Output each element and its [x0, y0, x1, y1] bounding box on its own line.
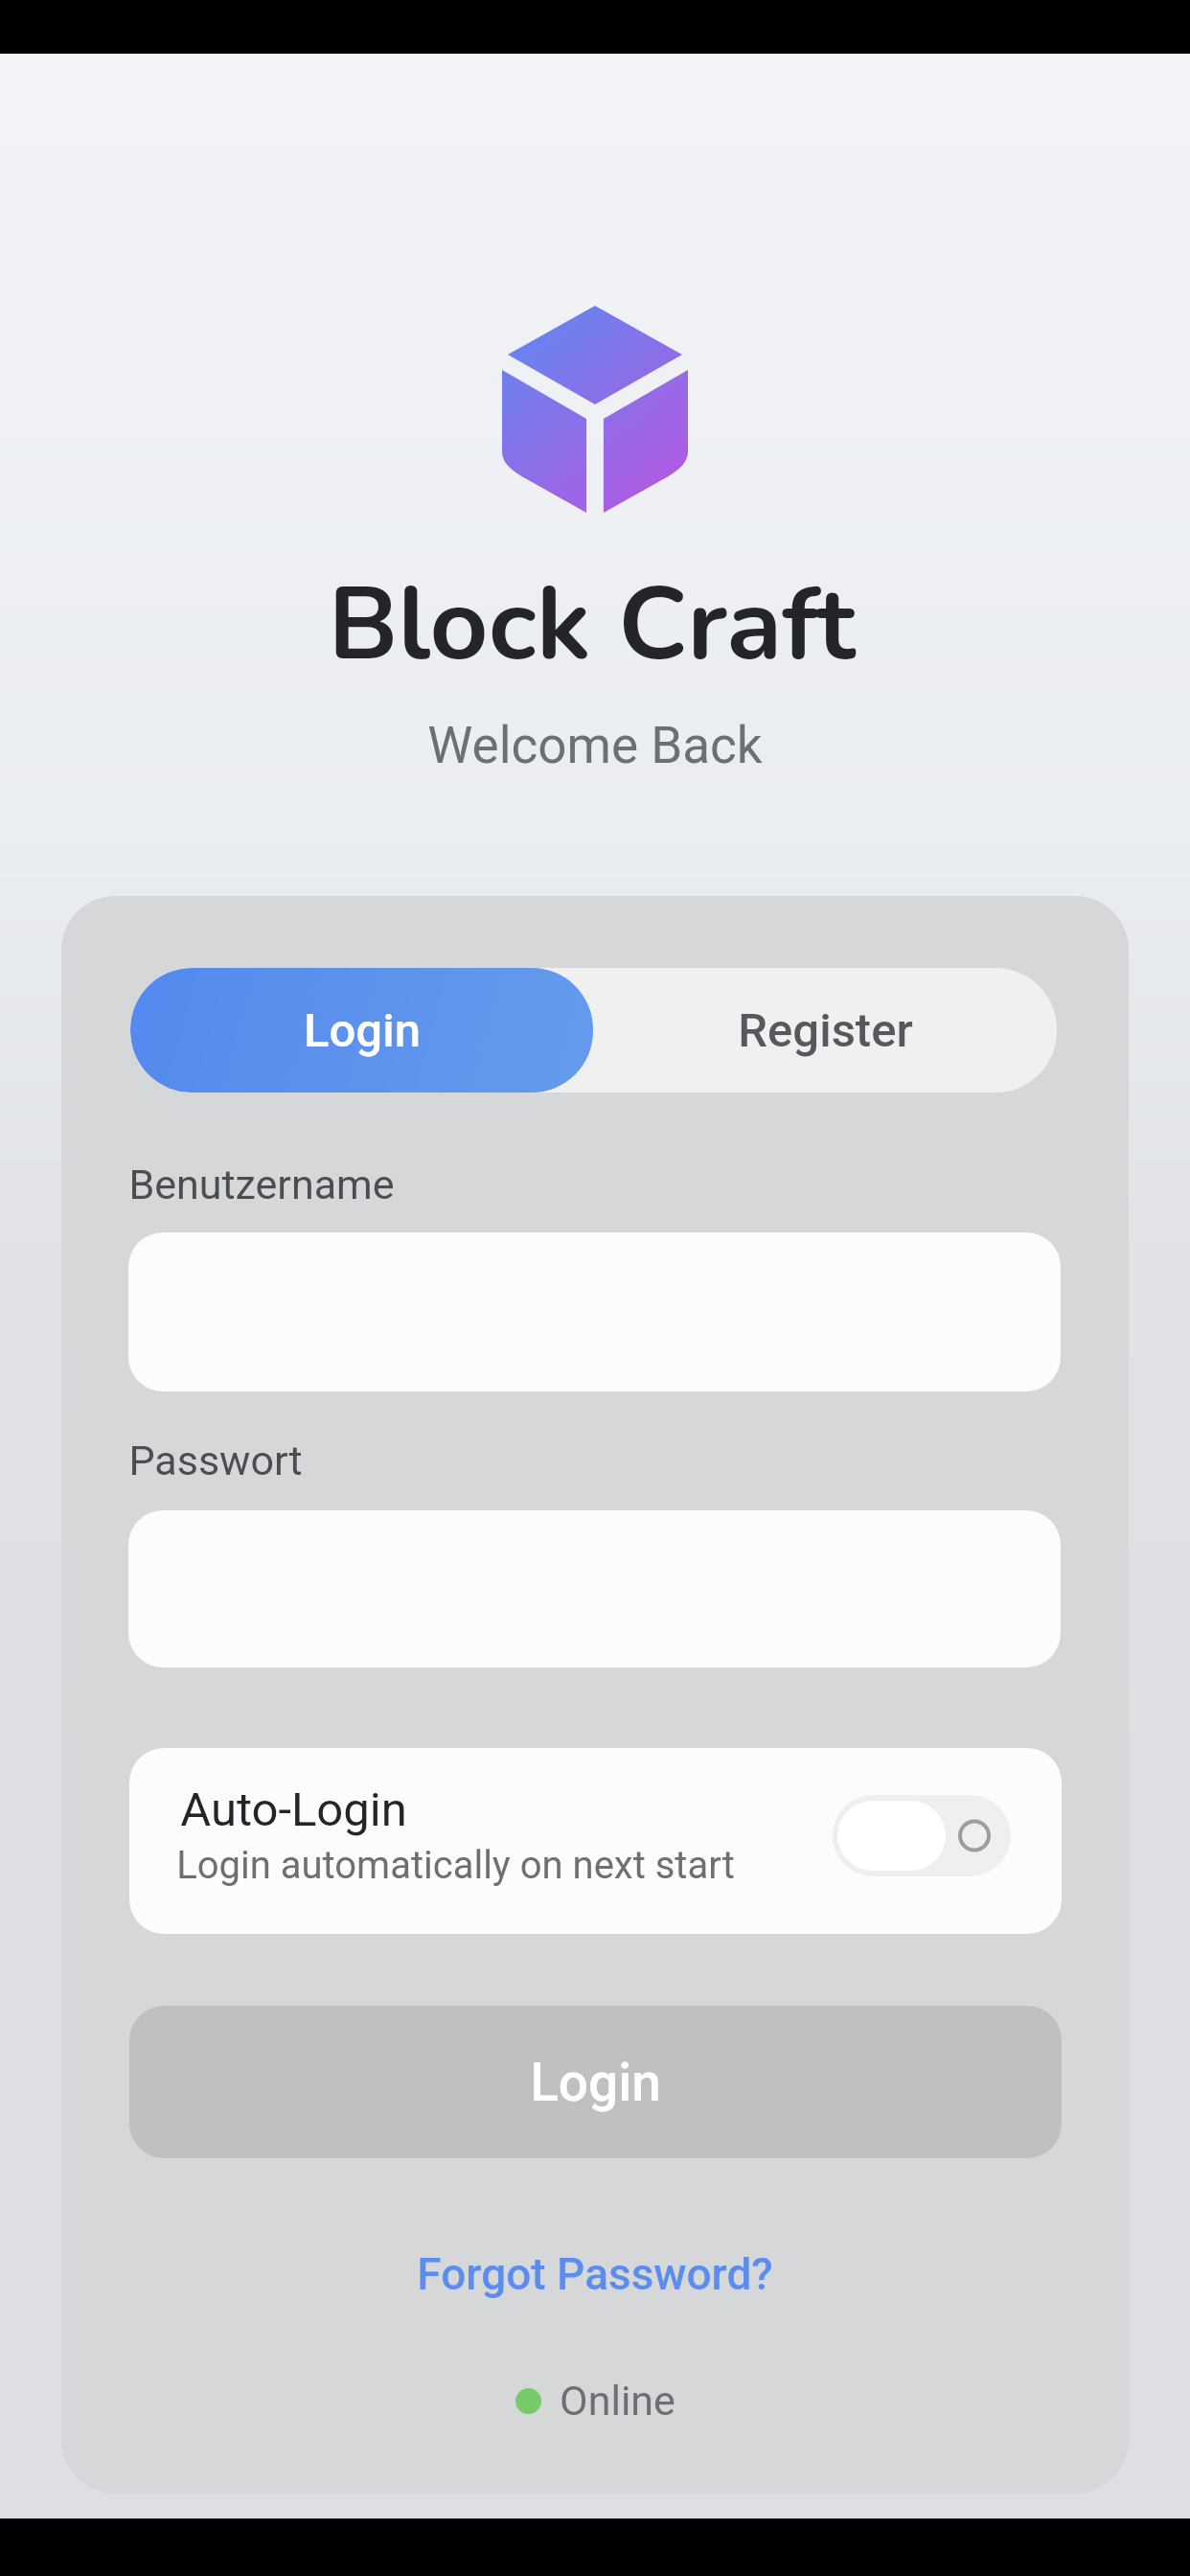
button[interactable]: Login — [130, 968, 593, 1092]
button[interactable]: Login — [129, 2006, 1062, 2158]
staticText: Welcome Back — [427, 716, 763, 775]
button[interactable]: Auto-Login toggle — [833, 1795, 1011, 1876]
button[interactable] — [128, 1232, 1061, 1391]
button[interactable]: Register — [593, 968, 1057, 1092]
staticText: Register — [738, 1003, 913, 1058]
button[interactable]: Auto-Login — [129, 1748, 1062, 1934]
button[interactable] — [128, 1510, 1061, 1667]
staticText: Passwort — [128, 1437, 303, 1484]
staticText: Block Craft — [328, 556, 856, 695]
staticText: Online — [560, 2377, 675, 2425]
staticText: Benutzername — [128, 1161, 395, 1208]
button[interactable]: Forgot Password? — [417, 2248, 773, 2300]
staticText: Login — [304, 1003, 421, 1058]
staticText: Auto-Login — [180, 1782, 407, 1837]
staticText: Login — [530, 2052, 661, 2113]
staticText: Forgot Password? — [417, 2248, 773, 2300]
staticText: Login automatically on next start — [176, 1843, 735, 1888]
